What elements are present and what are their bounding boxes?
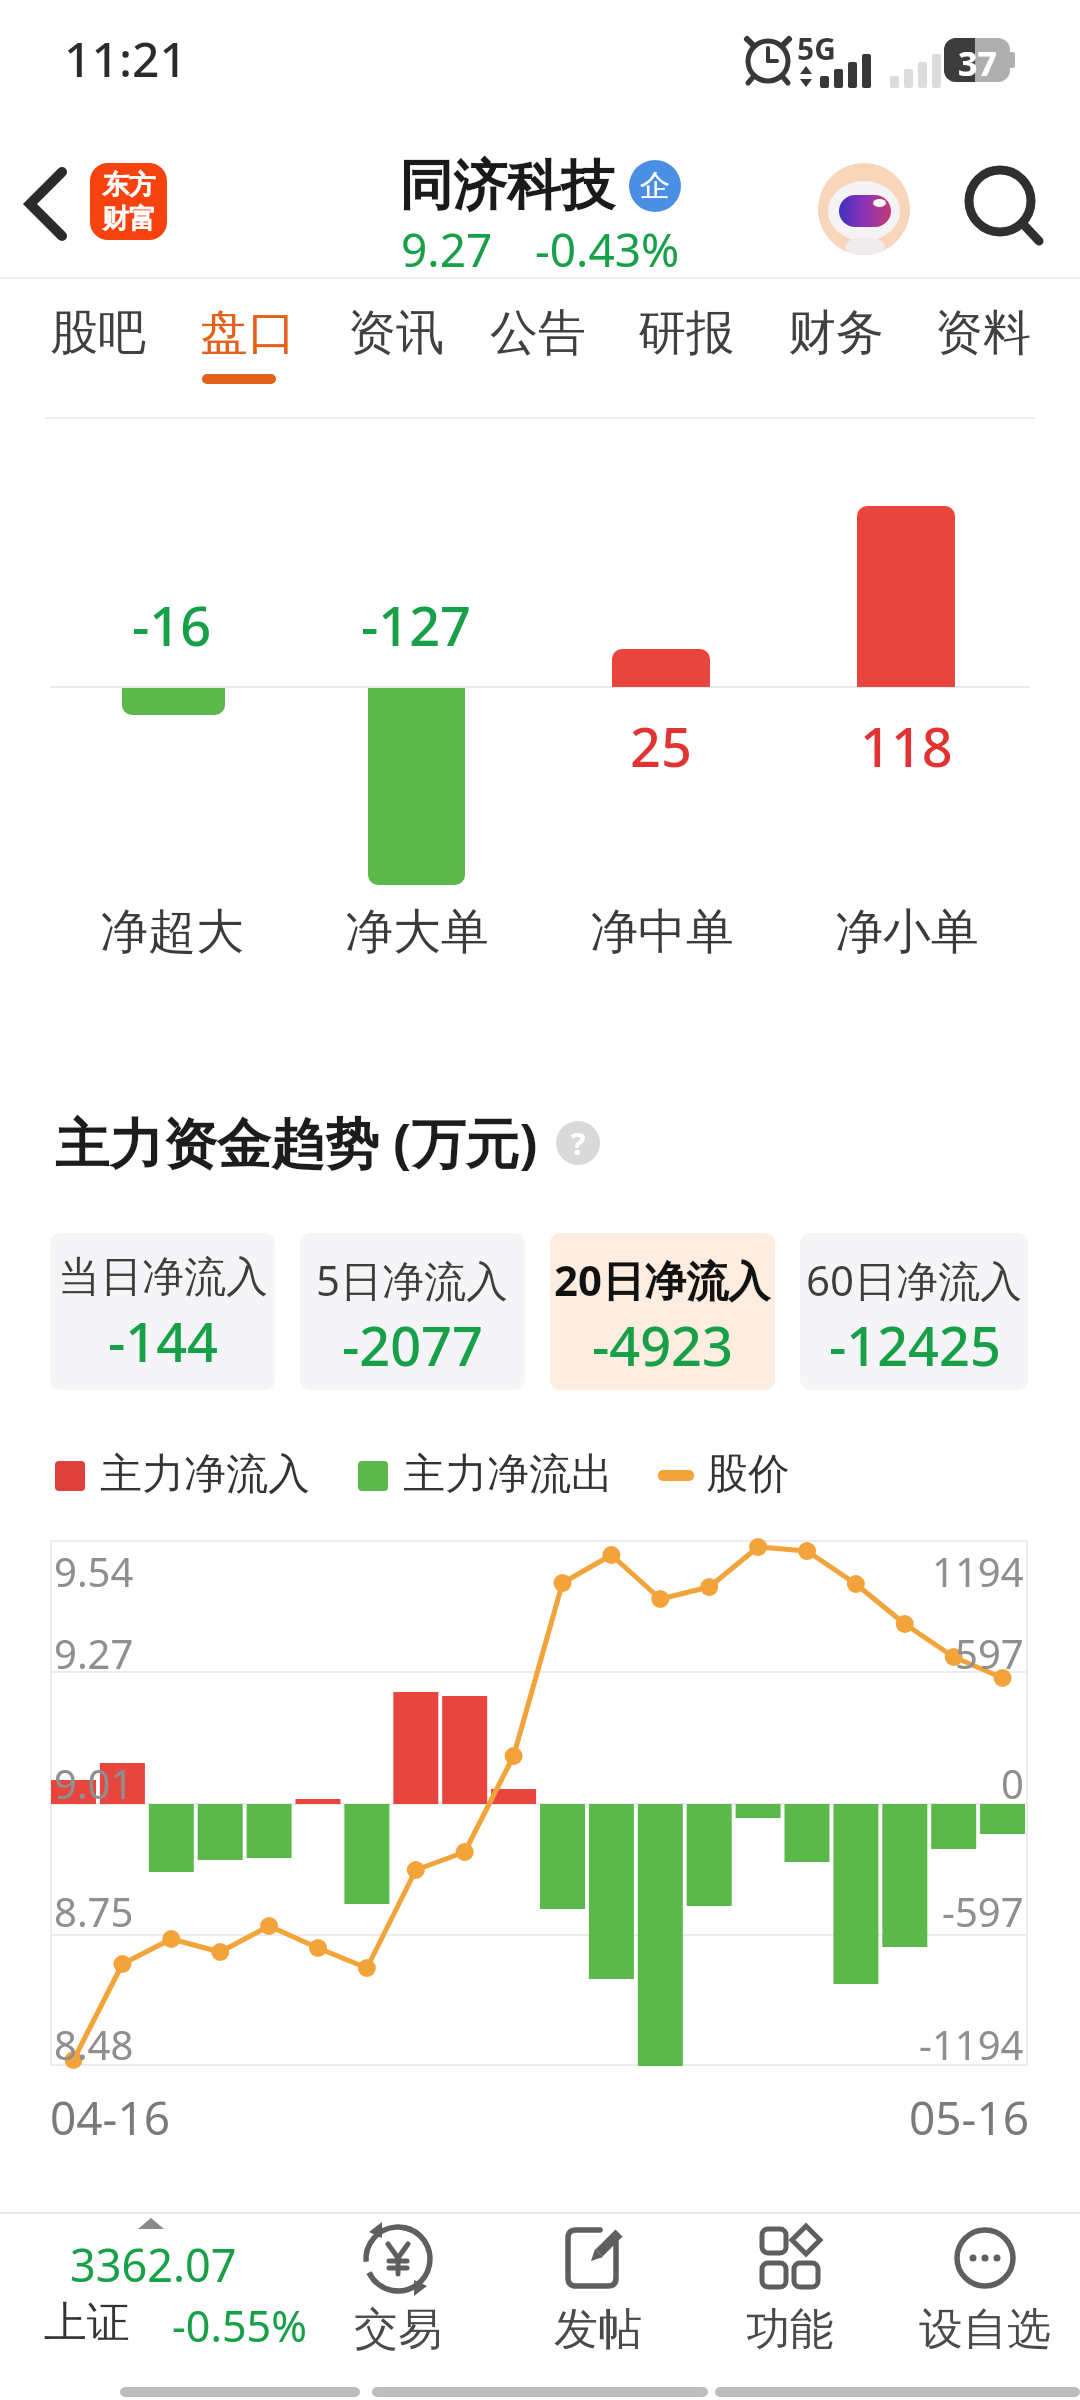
staticText: 05-16 <box>909 2086 1030 2149</box>
staticText: 财务 <box>788 303 884 363</box>
staticText: 公告 <box>490 303 586 363</box>
staticText: 60日净流入 <box>806 1251 1023 1308</box>
button[interactable]: 20日净流入 <box>550 1233 775 1390</box>
staticText: 研报 <box>638 303 734 363</box>
button[interactable] <box>16 160 86 250</box>
staticText: -12425 <box>829 1308 1001 1382</box>
staticText: -4923 <box>592 1308 733 1382</box>
button[interactable]: ? <box>556 1121 600 1165</box>
staticText: 设自选 <box>919 2302 1051 2357</box>
staticText: 9.54 <box>54 1544 134 1598</box>
button[interactable]: 60日净流入 <box>800 1233 1028 1390</box>
staticText: 盘口 <box>200 303 296 363</box>
staticText: 当日净流入 <box>58 1251 268 1304</box>
button[interactable]: 研报 <box>638 303 734 363</box>
button[interactable]: 财务 <box>788 303 884 363</box>
button[interactable]: 盘口 <box>200 303 296 363</box>
button[interactable]: 东方 <box>90 163 167 240</box>
staticText: 净中单 <box>590 902 734 962</box>
button[interactable]: 资讯 <box>348 303 444 363</box>
staticText: 股价 <box>706 1448 790 1501</box>
staticText: 118 <box>860 709 953 783</box>
button[interactable] <box>818 163 910 255</box>
button[interactable]: 设自选 <box>895 2216 1075 2366</box>
staticText: -2077 <box>342 1308 483 1382</box>
button[interactable]: 5日净流入 <box>300 1233 525 1390</box>
staticText: 资讯 <box>348 303 444 363</box>
staticText: 3362.07 <box>70 2234 237 2295</box>
staticText: 8.75 <box>54 1884 134 1938</box>
staticText: 净大单 <box>345 902 489 962</box>
button[interactable] <box>955 158 1050 253</box>
staticText: -144 <box>108 1304 218 1378</box>
staticText: 5日净流入 <box>316 1251 509 1308</box>
staticText: 主力净流出 <box>403 1448 613 1501</box>
staticText: 25 <box>630 709 692 783</box>
staticText: 股吧 <box>50 303 146 363</box>
staticText: 20日净流入 <box>554 1251 771 1308</box>
staticText: 1194 <box>932 1544 1024 1598</box>
staticText: 交易 <box>354 2302 442 2357</box>
staticText: 04-16 <box>50 2086 171 2149</box>
staticText: 东方 <box>102 168 156 202</box>
staticText: -16 <box>132 588 212 662</box>
button[interactable]: 公告 <box>490 303 586 363</box>
staticText: 597 <box>955 1626 1024 1680</box>
staticText: 资料 <box>935 303 1031 363</box>
button[interactable]: 交易 <box>308 2216 488 2366</box>
button[interactable]: 股吧 <box>50 303 146 363</box>
staticText: 上证 <box>44 2296 130 2350</box>
staticText: 发帖 <box>554 2302 642 2357</box>
button[interactable]: 资料 <box>935 303 1031 363</box>
staticText: 净小单 <box>835 902 979 962</box>
button[interactable]: 3362.07 <box>20 2216 330 2366</box>
staticText: 净超大 <box>100 902 244 962</box>
button[interactable]: 发帖 <box>508 2216 688 2366</box>
staticText: 企 <box>640 167 670 205</box>
staticText: ? <box>571 1123 586 1164</box>
staticText: 11:21 <box>64 26 187 91</box>
staticText: 同济科技 <box>399 152 615 220</box>
staticText: 9.27 <box>54 1626 134 1680</box>
staticText: 8.48 <box>54 2017 134 2071</box>
staticText: 功能 <box>746 2302 834 2357</box>
staticText: 主力净流入 <box>100 1448 310 1501</box>
staticText: 9.01 <box>54 1756 134 1810</box>
staticText: 5G <box>797 28 836 69</box>
button[interactable]: 同济科技 <box>399 152 681 220</box>
staticText: -1194 <box>919 2017 1024 2071</box>
staticText: -127 <box>361 588 471 662</box>
staticText: 财富 <box>102 202 156 236</box>
staticText: -0.55% <box>172 2296 307 2355</box>
button[interactable]: 功能 <box>700 2216 880 2366</box>
staticText: 37 <box>958 40 997 86</box>
staticText: -0.43% <box>535 218 680 281</box>
button[interactable]: 当日净流入 <box>50 1233 275 1390</box>
staticText: 0 <box>1001 1756 1024 1810</box>
staticText: 主力资金趋势 (万元) <box>55 1105 538 1179</box>
staticText: 9.27 <box>401 218 493 281</box>
staticText: -597 <box>942 1884 1024 1938</box>
